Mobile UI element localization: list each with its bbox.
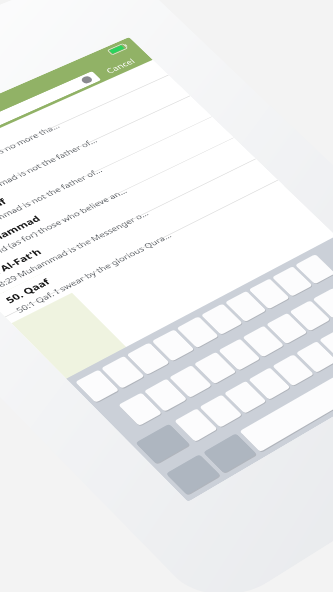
staticText: 50. Qaaf bbox=[15, 286, 68, 304]
staticText: 46. Al-Ahqaaf bbox=[15, 148, 101, 166]
button[interactable]: 3. Aal-E-Imraan bbox=[0, 51, 333, 97]
staticText: 33:40 And Muhammad is not the father of… bbox=[15, 123, 240, 138]
staticText: 48:29 Muhammad is the Messenger o… bbox=[15, 261, 219, 276]
staticText: 47:2 And (as for) those who believe an… bbox=[15, 215, 220, 230]
button[interactable]: 33. Al-Ahzaab bbox=[0, 97, 333, 143]
staticText: the bbox=[14, 277, 33, 293]
staticText: 46:10 Muhammad is not the father of… bbox=[15, 169, 217, 184]
button[interactable]: Muhammad bbox=[8, 27, 304, 47]
staticText: by bbox=[14, 295, 28, 311]
staticText: 50:1 Qaf. I swear by the glorious Qura… bbox=[15, 307, 219, 322]
staticText: 47. Muhammad bbox=[15, 194, 116, 212]
staticText: 3. Aal-E-Imraan bbox=[15, 56, 114, 74]
staticText: 3:144 And Muhammad is no more tha… bbox=[15, 77, 219, 92]
staticText: 33. Al-Ahzaab bbox=[15, 102, 102, 120]
button[interactable]: 46. Al-Ahqaaf bbox=[0, 143, 333, 189]
button[interactable]: 48. Al-Fat'h bbox=[0, 235, 333, 281]
button[interactable]: 50. Qaaf bbox=[0, 281, 333, 327]
staticText: 48. Al-Fat'h bbox=[15, 240, 87, 258]
button[interactable]: 47. Muhammad bbox=[0, 189, 333, 235]
